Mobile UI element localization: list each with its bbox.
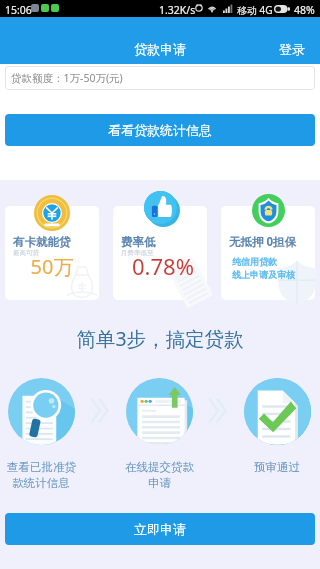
staticText: 月费率低至 bbox=[121, 249, 154, 257]
button[interactable] bbox=[221, 206, 315, 300]
staticText: 移动 4G bbox=[237, 3, 273, 17]
button[interactable]: 看看贷款统计信息 bbox=[5, 114, 315, 146]
staticText: 纯信用贷款 bbox=[232, 256, 277, 267]
staticText: 看看贷款统计信息 bbox=[108, 122, 212, 138]
staticText: 1.32K/s bbox=[159, 3, 196, 17]
staticText: 15:06 bbox=[5, 3, 32, 17]
staticText: 0.78% bbox=[121, 251, 205, 281]
staticText: 最高可贷 bbox=[13, 249, 39, 257]
staticText: 贷款额度：1万-50万(元) bbox=[11, 71, 123, 85]
button[interactable] bbox=[113, 206, 207, 300]
staticText: 50万 bbox=[13, 253, 91, 280]
staticText: 款统计信息 bbox=[12, 476, 70, 490]
staticText: 登录 bbox=[279, 41, 305, 57]
staticText: 预审通过 bbox=[254, 460, 300, 474]
staticText: 申请 bbox=[148, 476, 171, 490]
staticText: 在线提交贷款 bbox=[125, 460, 194, 474]
staticText: 费率低 bbox=[121, 235, 156, 249]
staticText: 48% bbox=[294, 3, 315, 17]
button[interactable]: 查看已批准贷 bbox=[0, 378, 95, 490]
staticText: 查看已批准贷 bbox=[7, 460, 76, 474]
button[interactable]: 登录 bbox=[265, 33, 320, 65]
staticText: 简单3步，搞定贷款 bbox=[0, 325, 320, 352]
staticText: 贷款申请 bbox=[134, 41, 186, 57]
button[interactable]: 贷款额度：1万-50万(元) bbox=[5, 66, 315, 90]
staticText: 有卡就能贷 bbox=[13, 235, 71, 249]
button[interactable]: 在线提交贷款 bbox=[105, 378, 213, 490]
staticText: 立即申请 bbox=[134, 521, 186, 537]
staticText: 无抵押 0担保 bbox=[229, 234, 297, 250]
staticText: 线上申请及审核 bbox=[232, 269, 295, 280]
button[interactable] bbox=[5, 206, 99, 300]
button[interactable]: 立即申请 bbox=[5, 513, 315, 545]
button[interactable]: 预审通过 bbox=[223, 378, 320, 474]
